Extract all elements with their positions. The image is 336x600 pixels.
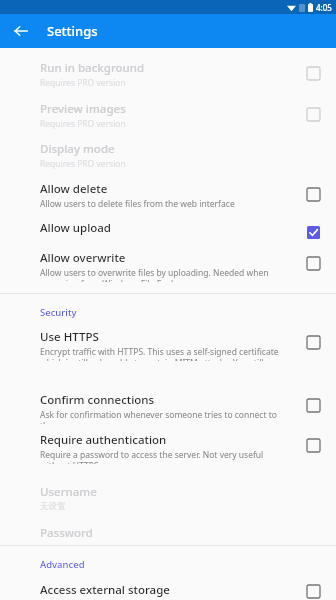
- button[interactable]: Allow upload: [0, 218, 336, 244]
- button[interactable]: Back: [6, 16, 36, 46]
- button[interactable]: Run in background: [0, 58, 336, 92]
- staticText: Require authentication: [40, 432, 167, 448]
- button[interactable]: Preview images: [300, 101, 326, 127]
- staticText: Settings: [47, 22, 98, 40]
- staticText: Allow overwrite: [40, 250, 126, 266]
- button[interactable]: Display mode: [0, 139, 336, 173]
- staticText: Allow upload: [40, 220, 111, 236]
- button[interactable]: Confirm connections: [300, 392, 326, 418]
- button[interactable]: Allow delete: [0, 179, 336, 213]
- staticText: Allow delete: [40, 181, 108, 197]
- button[interactable]: Confirm connections: [0, 390, 336, 424]
- staticText: Preview images: [40, 101, 126, 117]
- staticText: Security: [40, 306, 77, 319]
- staticText: Ask for confirmation whenever someone tr…: [40, 409, 290, 424]
- button[interactable]: Username: [0, 482, 336, 516]
- button[interactable]: Allow overwrite: [0, 248, 336, 282]
- button[interactable]: Access external storage: [300, 582, 326, 600]
- staticText: Display mode: [40, 141, 115, 157]
- staticText: Require a password to access the server.…: [40, 449, 290, 464]
- button[interactable]: Require authentication: [0, 430, 336, 464]
- staticText: Username: [40, 484, 97, 500]
- button[interactable]: Require authentication: [300, 432, 326, 458]
- staticText: Confirm connections: [40, 392, 155, 408]
- button[interactable]: Use HTTPS: [0, 327, 336, 361]
- button[interactable]: Allow overwrite: [300, 250, 326, 276]
- staticText: Allow users to delete files from the web…: [40, 198, 290, 210]
- staticText: Advanced: [40, 558, 85, 571]
- staticText: Password: [40, 525, 93, 541]
- staticText: 4:05: [316, 2, 332, 13]
- staticText: Requires PRO version: [40, 158, 290, 170]
- staticText: 无设置: [40, 501, 290, 512]
- staticText: Encrypt traffic with HTTPS. This uses a …: [40, 346, 290, 361]
- button[interactable]: Access external storage: [0, 580, 336, 600]
- button[interactable]: Preview images: [0, 99, 336, 133]
- staticText: Requires PRO version: [40, 118, 290, 130]
- button[interactable]: Password: [0, 523, 336, 549]
- staticText: Use HTTPS: [40, 329, 99, 345]
- staticText: Run in background: [40, 60, 145, 76]
- staticText: Allow users to overwrite files by upload…: [40, 267, 290, 282]
- button[interactable]: Allow upload: [300, 220, 326, 244]
- button[interactable]: Use HTTPS: [300, 329, 326, 355]
- staticText: Requires PRO version: [40, 77, 290, 89]
- button[interactable]: Allow delete: [300, 181, 326, 207]
- staticText: Access external storage: [40, 582, 170, 598]
- button[interactable]: Run in background: [300, 60, 326, 86]
